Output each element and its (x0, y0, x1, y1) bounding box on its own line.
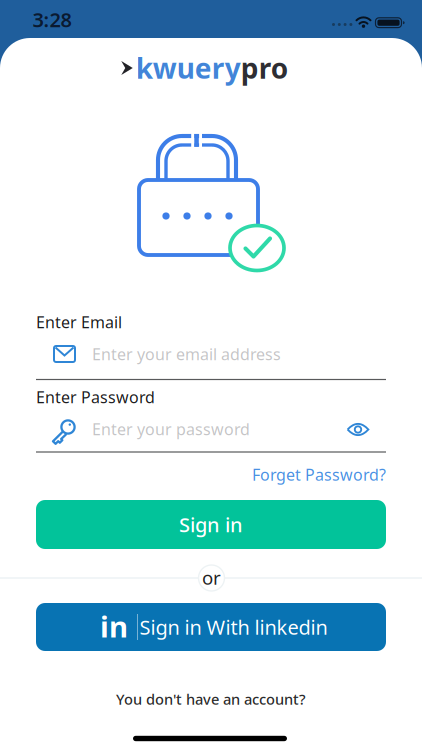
staticText: Sign in (179, 511, 243, 538)
button[interactable]: Sign in (36, 500, 386, 549)
staticText: in (100, 606, 128, 645)
button[interactable]: in (36, 603, 386, 651)
button[interactable]: Forget Password? (226, 464, 386, 485)
staticText: Enter Email (36, 311, 122, 333)
button[interactable]: Show password (346, 421, 370, 437)
staticText: You don't have an account? (116, 689, 306, 709)
staticText: kwuery (136, 49, 241, 87)
staticText: Forget Password? (252, 464, 386, 485)
button[interactable]: You don't have an account? (116, 689, 306, 709)
staticText: pro (241, 49, 289, 87)
staticText: Enter your email address (92, 343, 281, 365)
staticText: 3:28 (32, 6, 71, 33)
staticText: Sign in With linkedin (139, 614, 327, 640)
staticText: or (202, 565, 221, 590)
staticText: Enter Password (36, 386, 155, 408)
staticText: Enter your password (92, 418, 250, 440)
